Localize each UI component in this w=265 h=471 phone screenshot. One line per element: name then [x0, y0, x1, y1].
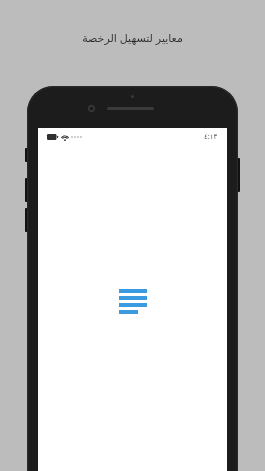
staticText: معايير لتسهيل الرخصة — [0, 30, 265, 45]
staticText: ٤:١٣ — [204, 132, 218, 142]
button[interactable]: Loading content — [115, 285, 151, 318]
